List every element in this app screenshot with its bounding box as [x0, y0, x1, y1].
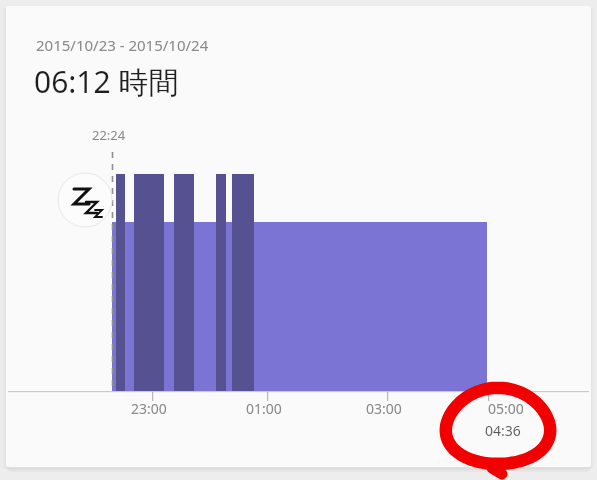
staticText: 05:00: [488, 399, 524, 418]
staticText: 22:24: [92, 126, 126, 144]
staticText: 06:12 時間: [34, 61, 179, 102]
button[interactable]: [6, 6, 591, 467]
button[interactable]: Sleep: [58, 173, 112, 227]
staticText: 23:00: [131, 399, 167, 418]
staticText: 04:36: [485, 421, 521, 440]
staticText: 01:00: [246, 399, 282, 418]
staticText: 2015/10/23 - 2015/10/24: [36, 35, 209, 55]
staticText: 03:00: [366, 399, 402, 418]
